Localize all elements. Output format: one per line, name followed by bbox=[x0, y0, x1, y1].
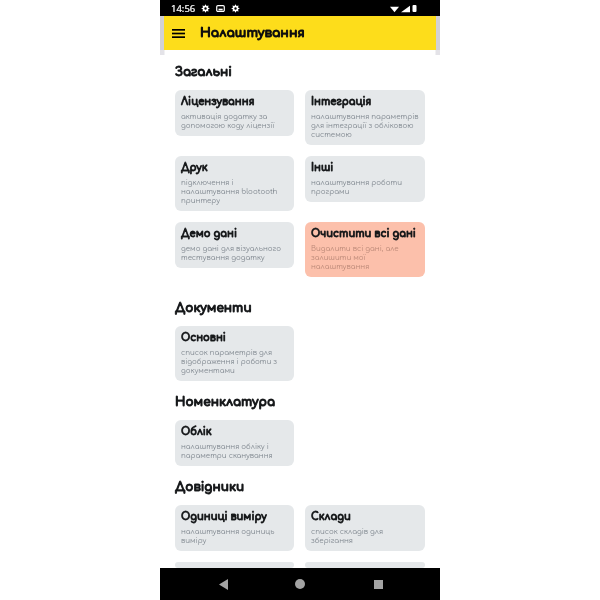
staticText: Налаштування bbox=[200, 26, 305, 40]
staticText: Налаштування bbox=[200, 26, 305, 40]
staticText: Основні bbox=[181, 332, 226, 344]
staticText: Очистити всі дані bbox=[311, 228, 416, 240]
staticText: Одиниці виміру bbox=[181, 511, 267, 523]
staticText: Номенклатура bbox=[175, 395, 276, 409]
button[interactable]: Демо дані bbox=[175, 222, 294, 268]
staticText: демо дані для візуального тестування дод… bbox=[181, 244, 289, 262]
staticText: Інтеграція bbox=[311, 96, 372, 108]
staticText: Друк bbox=[181, 162, 208, 174]
button[interactable]: Інтеграція bbox=[305, 90, 425, 145]
staticText: Номенклатура bbox=[175, 395, 276, 409]
staticText: список параметрів для відображення і роб… bbox=[181, 348, 289, 375]
staticText: Довідники bbox=[175, 480, 245, 494]
button[interactable]: Очистити всі дані bbox=[305, 222, 425, 277]
staticText: налаштування роботи програми bbox=[311, 178, 420, 196]
staticText: Інші bbox=[311, 162, 334, 174]
staticText: список складів для зберігання bbox=[311, 527, 420, 545]
staticText: Ліцензування bbox=[181, 96, 255, 108]
button[interactable]: Інші bbox=[305, 156, 425, 202]
staticText: 14:56 bbox=[171, 2, 196, 15]
staticText: налаштування обліку і параметри скануван… bbox=[181, 442, 289, 460]
button[interactable]: Back bbox=[208, 569, 238, 599]
staticText: Друк bbox=[181, 162, 208, 174]
staticText: Очистити всі дані bbox=[311, 228, 416, 240]
staticText: Інтеграція bbox=[311, 96, 372, 108]
staticText: Загальні bbox=[175, 65, 232, 79]
staticText: Демо дані bbox=[181, 228, 237, 240]
staticText: Склади bbox=[311, 511, 351, 523]
button[interactable]: Open navigation menu bbox=[164, 16, 193, 50]
button[interactable]: Склади bbox=[305, 505, 425, 551]
staticText: Облік bbox=[181, 426, 212, 438]
staticText: Одиниці виміру bbox=[181, 511, 267, 523]
staticText: Документи bbox=[175, 301, 252, 315]
staticText: Інші bbox=[311, 162, 334, 174]
staticText: Ліцензування bbox=[181, 96, 255, 108]
staticText: Основні bbox=[181, 332, 226, 344]
button[interactable]: Recent apps bbox=[363, 569, 393, 599]
button[interactable]: Ліцензування bbox=[175, 90, 294, 136]
button[interactable]: Одиниці виміру bbox=[175, 505, 294, 551]
staticText: Склади bbox=[311, 511, 351, 523]
button[interactable]: Основні bbox=[175, 326, 294, 381]
button[interactable]: Друк bbox=[175, 156, 294, 211]
staticText: Загальні bbox=[175, 65, 232, 79]
staticText: підключення і налаштування blootooth при… bbox=[181, 178, 289, 205]
button[interactable]: Home bbox=[285, 569, 315, 599]
staticText: Довідники bbox=[175, 480, 245, 494]
staticText: Облік bbox=[181, 426, 212, 438]
staticText: налаштування одиниць виміру bbox=[181, 527, 289, 545]
staticText: Документи bbox=[175, 301, 252, 315]
staticText: активація додатку за допомогою коду ліце… bbox=[181, 112, 289, 130]
staticText: Видалити всі дані, але залишити мої нала… bbox=[311, 244, 420, 271]
button[interactable]: Облік bbox=[175, 420, 294, 466]
staticText: налаштування параметрів для інтеграції з… bbox=[311, 112, 420, 139]
staticText: Демо дані bbox=[181, 228, 237, 240]
